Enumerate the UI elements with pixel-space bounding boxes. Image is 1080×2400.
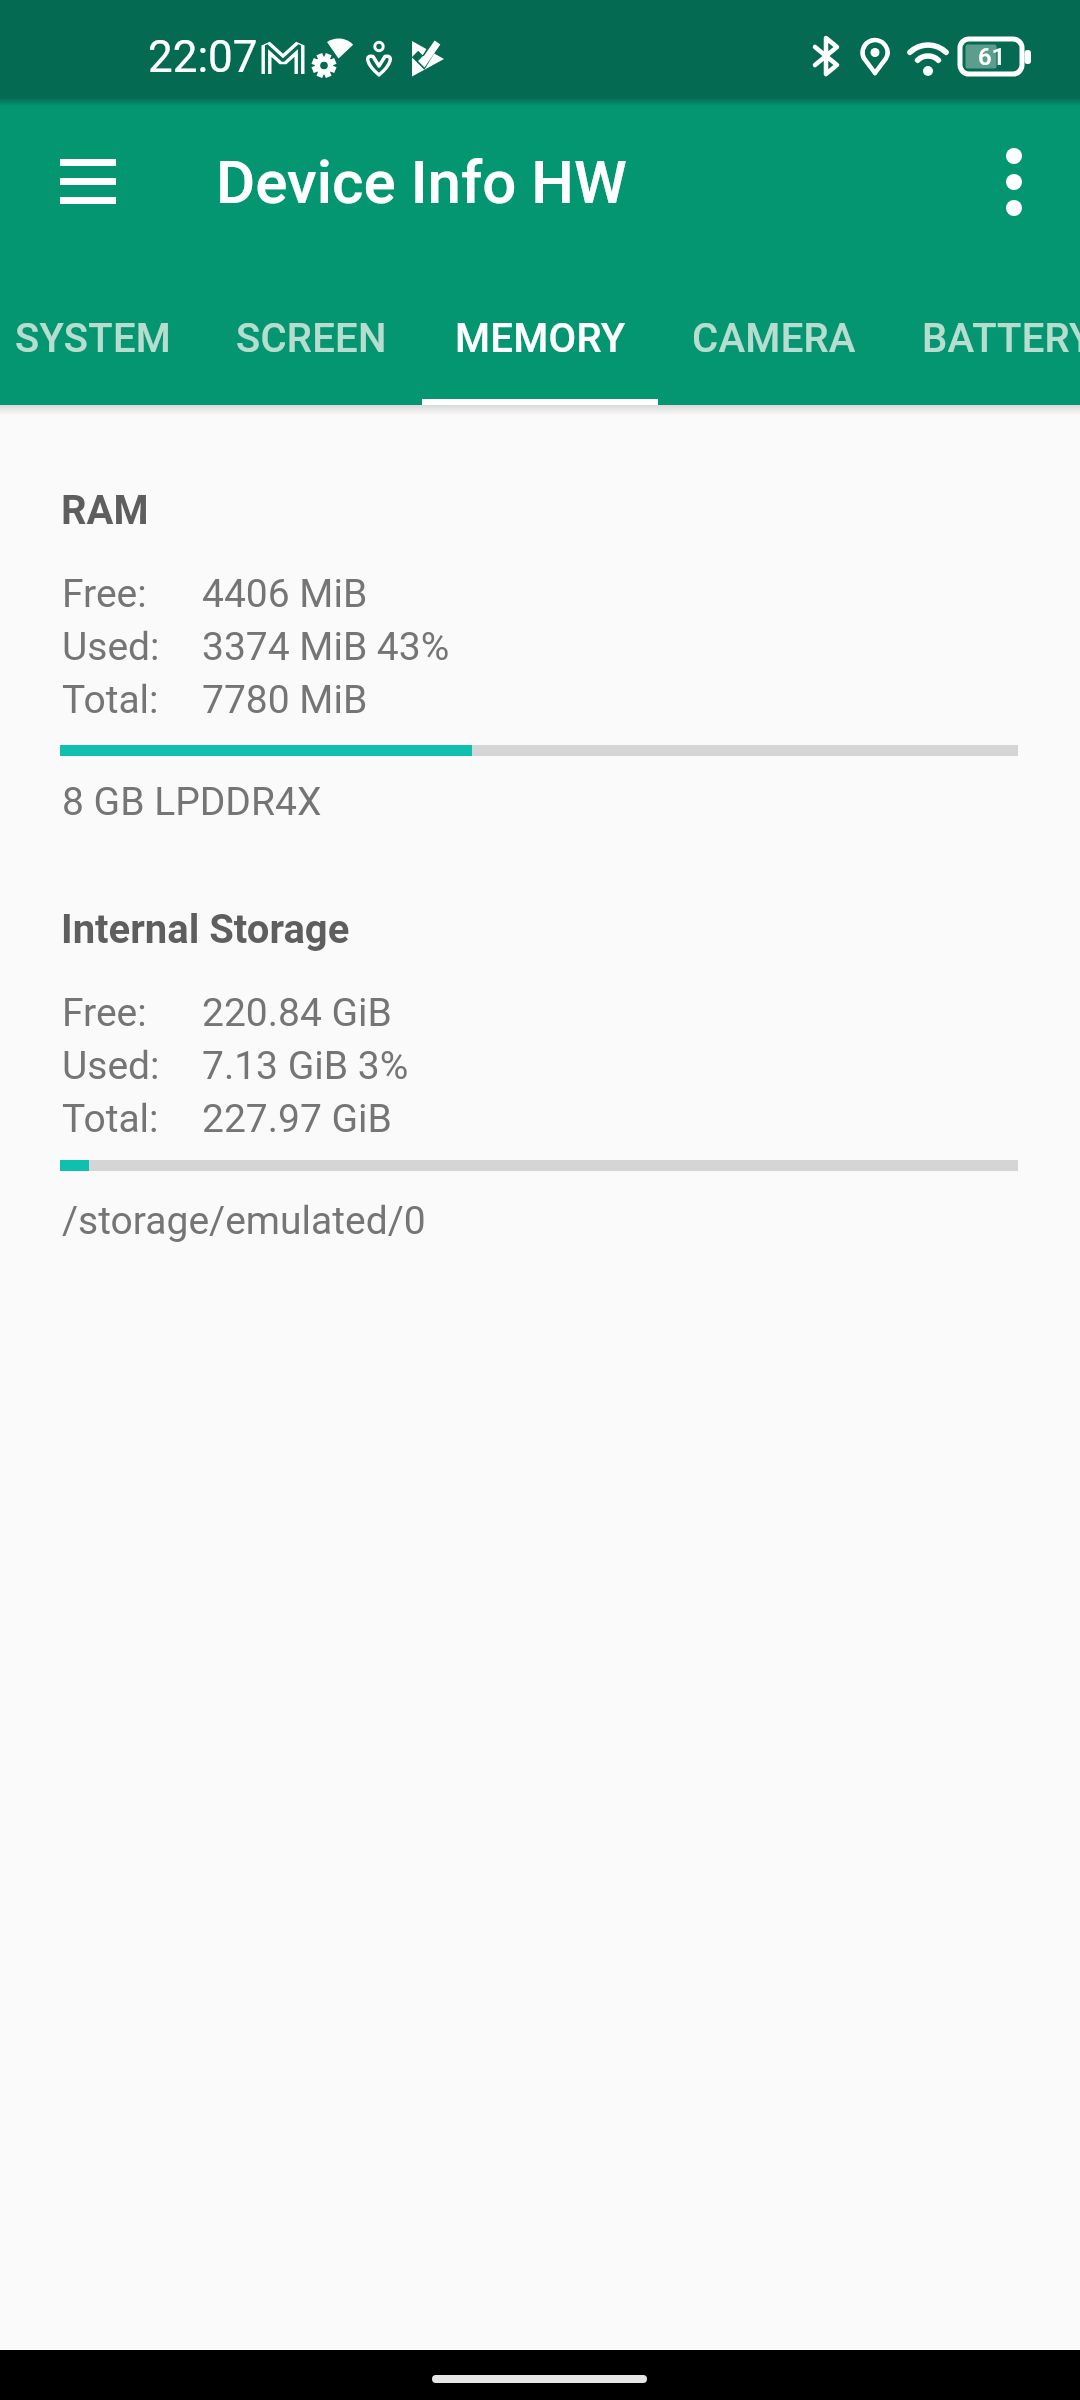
staticText: 7.13 GiB 3%: [202, 1043, 409, 1089]
staticText: 4406 MiB: [202, 571, 368, 617]
staticText: Device Info HW: [216, 147, 627, 217]
staticText: Used:: [62, 1043, 160, 1089]
staticText: Total:: [62, 1096, 159, 1142]
staticText: 227.97 GiB: [202, 1096, 392, 1142]
button[interactable]: SYSTEM: [0, 266, 211, 410]
staticText: SYSTEM: [15, 315, 172, 362]
staticText: 3374 MiB 43%: [202, 624, 450, 670]
button[interactable]: SCREEN: [193, 266, 429, 410]
staticText: Used:: [62, 624, 160, 670]
staticText: Internal Storage: [61, 906, 350, 953]
button[interactable]: [48, 150, 128, 214]
button[interactable]: BATTERY: [890, 266, 1080, 410]
staticText: BATTERY: [922, 315, 1080, 362]
button[interactable]: MEMORY: [422, 266, 658, 410]
staticText: 22:07: [148, 31, 258, 83]
staticText: SCREEN: [236, 315, 387, 362]
staticText: Free:: [62, 571, 147, 617]
staticText: MEMORY: [455, 315, 626, 362]
staticText: Free:: [62, 990, 147, 1036]
staticText: RAM: [61, 487, 149, 534]
staticText: 61: [978, 43, 1006, 71]
button[interactable]: CAMERA: [656, 266, 892, 410]
staticText: CAMERA: [692, 315, 856, 362]
staticText: 8 GB LPDDR4X: [62, 779, 322, 825]
staticText: 220.84 GiB: [202, 990, 392, 1036]
staticText: Total:: [62, 677, 159, 723]
staticText: /storage/emulated/0: [62, 1198, 426, 1244]
button[interactable]: [975, 142, 1055, 222]
staticText: 7780 MiB: [202, 677, 368, 723]
